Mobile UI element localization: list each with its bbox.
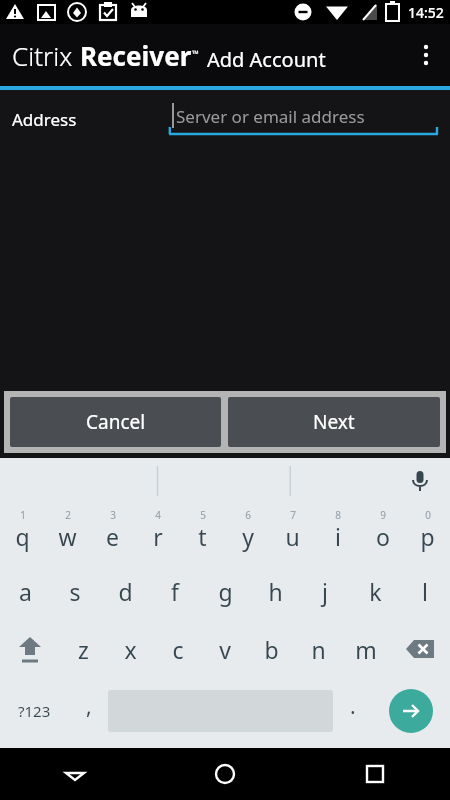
staticText: f xyxy=(171,576,179,607)
staticText: Citrix xyxy=(12,38,80,73)
staticText: 1 xyxy=(20,508,26,522)
button[interactable]: x xyxy=(107,620,154,678)
staticText: i xyxy=(335,521,341,552)
button[interactable]: d xyxy=(100,562,150,620)
staticText: , xyxy=(86,692,92,721)
button[interactable]: 2 xyxy=(45,504,90,562)
staticText: m xyxy=(355,634,377,665)
button[interactable]: 6 xyxy=(225,504,270,562)
button[interactable]: 1 xyxy=(0,504,45,562)
button[interactable]: l xyxy=(400,562,450,620)
button[interactable]: 8 xyxy=(315,504,360,562)
button[interactable]: b xyxy=(248,620,295,678)
button[interactable]: Home xyxy=(150,748,300,800)
staticText: Server or email address xyxy=(176,105,365,128)
button[interactable]: 3 xyxy=(90,504,135,562)
button[interactable]: Next xyxy=(228,397,440,447)
staticText: j xyxy=(322,576,328,607)
staticText: Address xyxy=(12,108,77,131)
staticText: c xyxy=(172,634,184,665)
button[interactable]: f xyxy=(150,562,200,620)
staticText: 7 xyxy=(290,508,296,522)
staticText: x xyxy=(124,634,137,665)
staticText: 14:52 xyxy=(408,3,444,22)
button[interactable]: m xyxy=(342,620,389,678)
staticText: 8 xyxy=(335,508,341,522)
button[interactable]: 9 xyxy=(360,504,405,562)
staticText: u xyxy=(285,521,300,552)
button[interactable]: Cancel xyxy=(10,397,221,447)
staticText: z xyxy=(78,634,89,665)
button[interactable]: h xyxy=(250,562,300,620)
button[interactable]: g xyxy=(200,562,250,620)
staticText: k xyxy=(369,576,382,607)
button[interactable]: a xyxy=(0,562,50,620)
button[interactable]: k xyxy=(350,562,400,620)
button[interactable]: Enter xyxy=(372,678,450,744)
staticText: Receiver xyxy=(80,38,192,73)
button[interactable]: s xyxy=(50,562,100,620)
staticText: r xyxy=(153,521,163,552)
staticText: . xyxy=(350,692,356,721)
staticText: q xyxy=(15,521,30,552)
staticText: d xyxy=(118,576,133,607)
staticText: 3 xyxy=(110,508,116,522)
staticText: Next xyxy=(313,409,355,435)
staticText: h xyxy=(268,576,283,607)
staticText: a xyxy=(19,576,32,607)
staticText: 6 xyxy=(245,508,251,522)
button[interactable]: Backspace xyxy=(389,620,450,678)
staticText: n xyxy=(311,634,326,665)
staticText: ™ xyxy=(192,47,199,59)
button[interactable]: More options xyxy=(402,31,450,79)
staticText: w xyxy=(58,521,77,552)
staticText: v xyxy=(219,634,231,665)
staticText: Cancel xyxy=(86,409,146,435)
button[interactable]: Recent apps xyxy=(300,748,450,800)
staticText: l xyxy=(422,576,428,607)
button[interactable]: v xyxy=(201,620,248,678)
staticText: 9 xyxy=(380,508,386,522)
staticText: o xyxy=(376,521,390,552)
button[interactable]: ?123 xyxy=(0,678,69,744)
staticText: 2 xyxy=(65,508,71,522)
staticText: p xyxy=(420,521,435,552)
staticText: ?123 xyxy=(18,701,51,721)
staticText: t xyxy=(198,521,207,552)
button[interactable]: 7 xyxy=(270,504,315,562)
button[interactable]: n xyxy=(295,620,342,678)
staticText: 4 xyxy=(155,508,161,522)
button[interactable]: Shift xyxy=(0,620,60,678)
staticText: y xyxy=(242,521,254,552)
button[interactable]: 0 xyxy=(405,504,450,562)
button[interactable]: Voice input xyxy=(404,465,436,497)
staticText: Add Account xyxy=(207,46,326,73)
button[interactable]: j xyxy=(300,562,350,620)
button[interactable]: Voice input xyxy=(0,458,450,504)
staticText: 0 xyxy=(425,508,431,522)
button[interactable]: Back xyxy=(0,748,150,800)
button[interactable]: c xyxy=(154,620,201,678)
button[interactable]: Server or email address xyxy=(169,97,438,141)
button[interactable]: . xyxy=(333,678,372,744)
staticText: e xyxy=(106,521,119,552)
button[interactable]: 4 xyxy=(135,504,180,562)
staticText: 5 xyxy=(200,508,206,522)
button[interactable]: 5 xyxy=(180,504,225,562)
staticText: s xyxy=(69,576,81,607)
button[interactable]: z xyxy=(60,620,107,678)
staticText: g xyxy=(218,576,233,607)
button[interactable]: , xyxy=(69,678,108,744)
staticText: b xyxy=(264,634,279,665)
